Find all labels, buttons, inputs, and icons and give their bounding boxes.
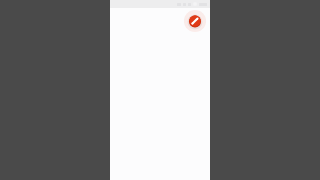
button[interactable]: Compose new message (183, 9, 207, 33)
